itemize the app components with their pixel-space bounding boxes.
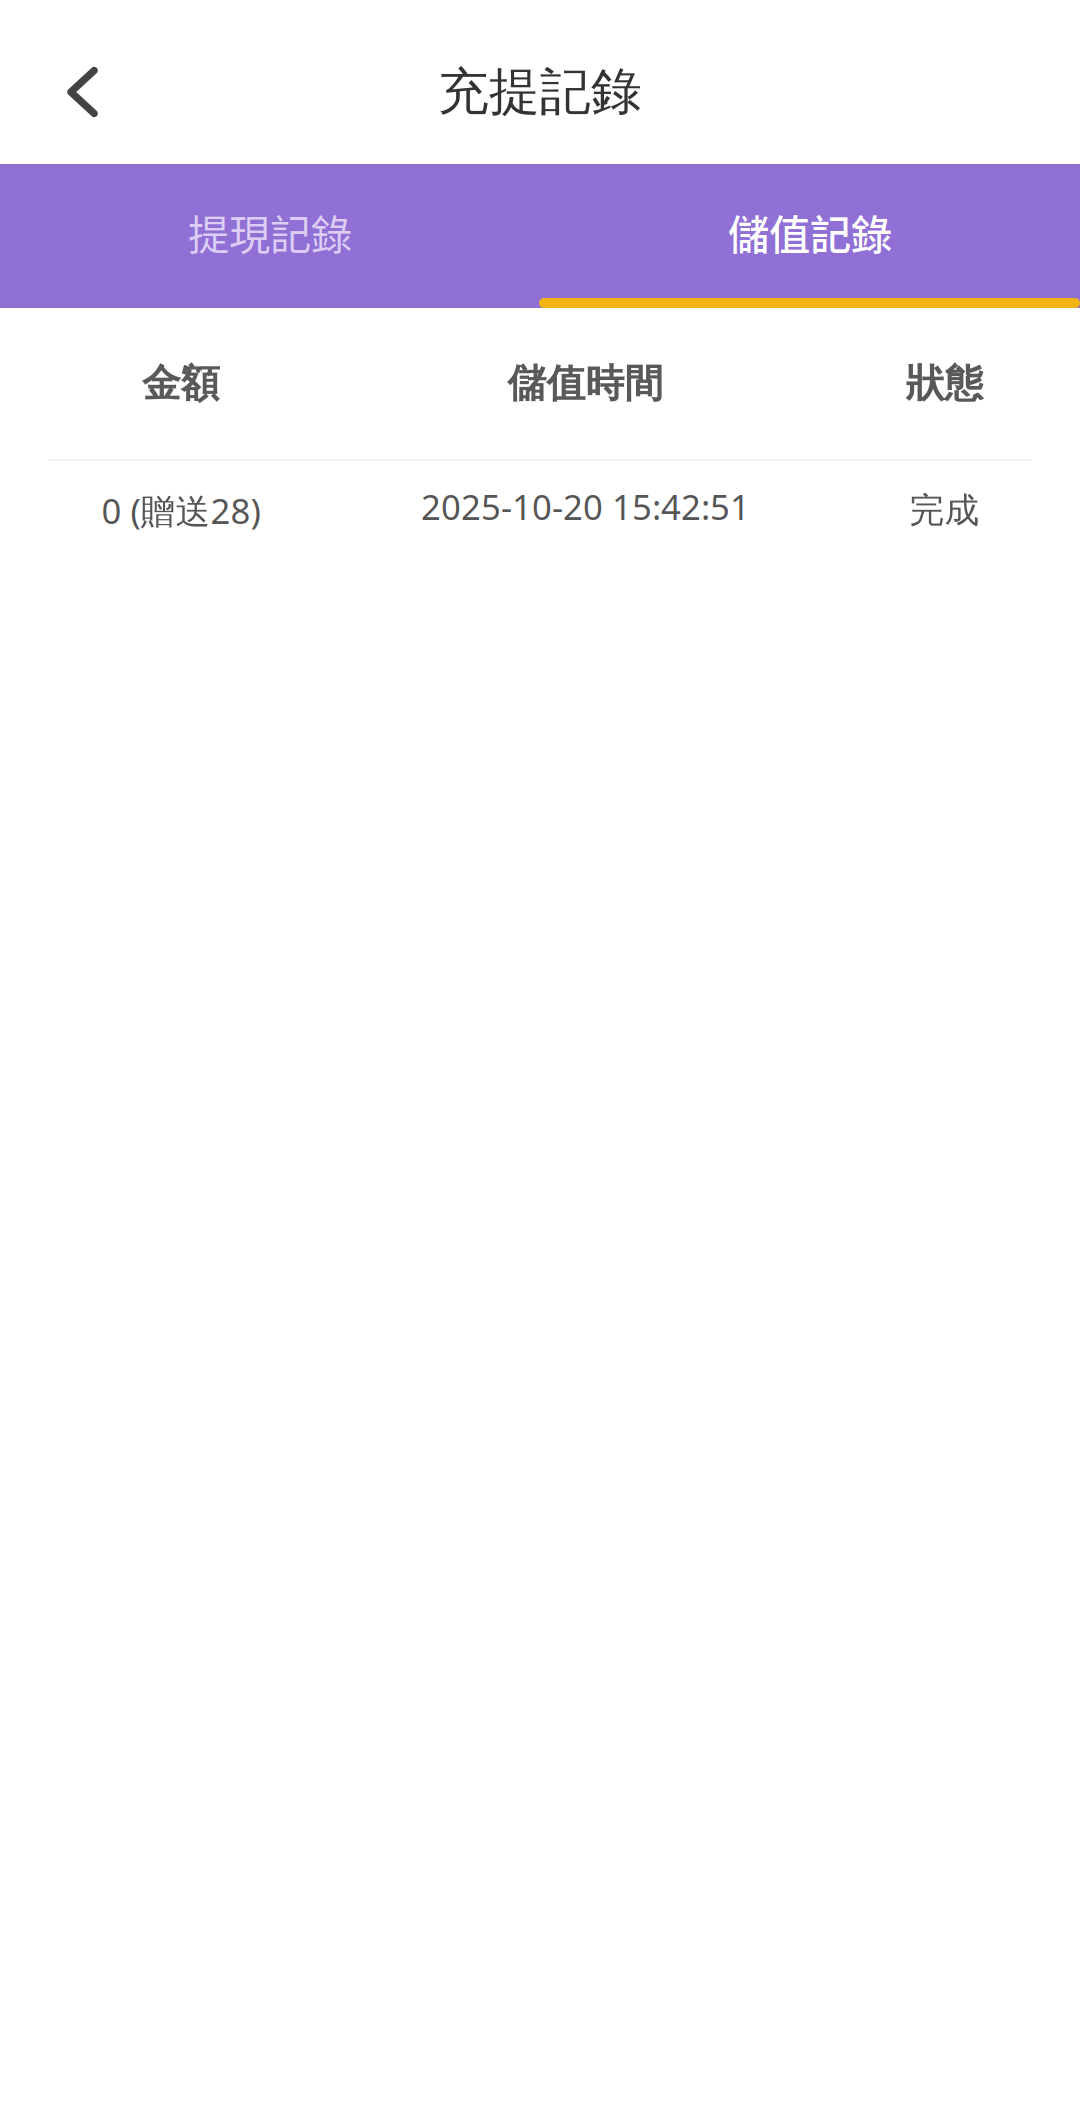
staticText: 儲值記錄 — [728, 203, 892, 261]
button[interactable]: 儲值記錄 — [540, 164, 1080, 308]
staticText: 金額 — [142, 360, 220, 407]
staticText: 0 (贈送28) — [101, 487, 260, 533]
staticText: 儲值時間 — [507, 360, 663, 407]
staticText: 完成 — [909, 489, 979, 532]
staticText: 狀態 — [905, 360, 983, 407]
button[interactable]: 提現記錄 — [0, 164, 540, 308]
staticText: 充提記錄 — [438, 61, 642, 123]
staticText: 提現記錄 — [188, 203, 352, 261]
button[interactable]: Back — [15, 21, 150, 163]
staticText: 2025-10-20 15:42:51 — [421, 483, 750, 529]
